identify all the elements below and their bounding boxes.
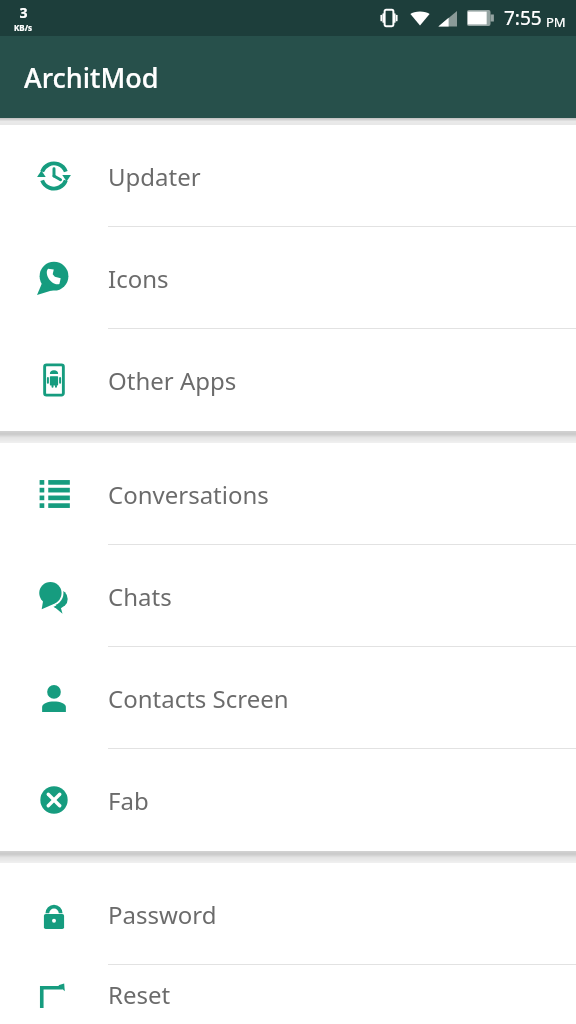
staticText: Contacts Screen bbox=[108, 682, 289, 715]
staticText: 3 bbox=[19, 3, 28, 22]
button[interactable]: Icons bbox=[0, 227, 576, 329]
button[interactable]: Chats bbox=[0, 545, 576, 647]
button[interactable]: Updater bbox=[0, 125, 576, 227]
staticText: Updater bbox=[108, 160, 201, 193]
staticText: ArchitMod bbox=[24, 59, 159, 96]
staticText: Chats bbox=[108, 580, 172, 613]
staticText: Fab bbox=[108, 784, 149, 817]
button[interactable]: Password bbox=[0, 863, 576, 965]
staticText: Other Apps bbox=[108, 364, 237, 397]
other: Wi-Fi bbox=[410, 8, 430, 28]
staticText: Reset bbox=[108, 978, 171, 1011]
other: Battery 76 percent bbox=[467, 10, 495, 26]
button[interactable]: Conversations bbox=[0, 443, 576, 545]
staticText: Password bbox=[108, 898, 217, 931]
staticText: Conversations bbox=[108, 478, 269, 511]
other: Vibrate mode bbox=[378, 7, 400, 29]
staticText: 7:55 bbox=[504, 5, 542, 31]
button[interactable]: Contacts Screen bbox=[0, 647, 576, 749]
button[interactable]: Reset bbox=[0, 965, 576, 1024]
staticText: KB/s bbox=[14, 22, 32, 33]
button[interactable]: Other Apps bbox=[0, 329, 576, 431]
staticText: Icons bbox=[108, 262, 169, 295]
other: Mobile signal bbox=[438, 9, 457, 28]
staticText: PM bbox=[546, 13, 566, 31]
button[interactable]: Fab bbox=[0, 749, 576, 851]
